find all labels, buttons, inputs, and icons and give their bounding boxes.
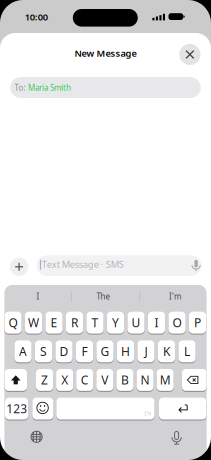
button[interactable]: U bbox=[127, 312, 145, 334]
button[interactable]: J bbox=[137, 340, 155, 362]
button[interactable]: S bbox=[35, 340, 52, 362]
staticText: P bbox=[194, 315, 201, 331]
staticText: K bbox=[163, 343, 170, 359]
staticText: L bbox=[184, 343, 190, 359]
button[interactable]: R bbox=[66, 312, 83, 334]
button[interactable]: Text Message · SMS bbox=[37, 255, 201, 276]
button[interactable]: V bbox=[96, 369, 113, 391]
staticText: I bbox=[36, 291, 39, 302]
staticText: V bbox=[101, 372, 108, 388]
button[interactable]: W bbox=[25, 312, 42, 334]
staticText: O bbox=[172, 315, 181, 331]
button[interactable] bbox=[179, 44, 200, 65]
staticText: F bbox=[81, 343, 87, 359]
button[interactable]: To: bbox=[10, 77, 201, 98]
button[interactable]: A bbox=[14, 340, 32, 362]
button[interactable]: F bbox=[76, 340, 93, 362]
staticText: EN bbox=[144, 410, 151, 417]
button[interactable]: B bbox=[116, 369, 133, 391]
staticText: B bbox=[121, 372, 129, 388]
button[interactable]: N bbox=[136, 369, 154, 391]
button[interactable]: X bbox=[56, 369, 73, 391]
button[interactable]: P bbox=[189, 312, 206, 334]
staticText: Z bbox=[41, 372, 48, 388]
button[interactable]: C bbox=[76, 369, 93, 391]
staticText: X bbox=[61, 372, 68, 388]
button[interactable]: O bbox=[168, 312, 186, 334]
staticText: To: bbox=[15, 82, 26, 93]
button[interactable] bbox=[29, 429, 45, 445]
staticText: 10:00 bbox=[25, 11, 48, 23]
button[interactable]: Z bbox=[36, 369, 53, 391]
staticText: J bbox=[144, 343, 147, 359]
staticText: T bbox=[91, 315, 98, 331]
button[interactable] bbox=[182, 369, 207, 391]
button[interactable] bbox=[4, 369, 27, 391]
staticText: G bbox=[100, 343, 109, 359]
button[interactable]: H bbox=[117, 340, 134, 362]
staticText: R bbox=[71, 315, 78, 331]
button[interactable] bbox=[32, 398, 53, 419]
staticText: The bbox=[96, 291, 110, 302]
staticText: C bbox=[81, 372, 89, 388]
button[interactable]: K bbox=[158, 340, 175, 362]
button[interactable] bbox=[10, 258, 28, 276]
staticText: Q bbox=[8, 315, 17, 331]
staticText: 123 bbox=[6, 401, 27, 416]
staticText: E bbox=[50, 315, 57, 331]
staticText: H bbox=[121, 343, 130, 359]
staticText: New Message bbox=[74, 47, 136, 59]
staticText: M bbox=[160, 372, 171, 388]
button[interactable]: L bbox=[178, 340, 196, 362]
staticText: D bbox=[59, 343, 68, 359]
button[interactable]: M bbox=[157, 369, 174, 391]
staticText: W bbox=[28, 315, 39, 331]
button[interactable]: I bbox=[8, 287, 68, 305]
staticText: Maria Smith bbox=[28, 82, 71, 93]
button[interactable] bbox=[56, 398, 155, 419]
staticText: A bbox=[19, 343, 27, 359]
staticText: Y bbox=[112, 315, 119, 331]
staticText: I bbox=[154, 315, 158, 331]
staticText: S bbox=[40, 343, 47, 359]
button[interactable]: Q bbox=[4, 312, 22, 334]
staticText: U bbox=[131, 315, 140, 331]
button[interactable]: D bbox=[55, 340, 73, 362]
staticText: I'm bbox=[169, 291, 181, 302]
staticText: Text Message · SMS bbox=[42, 258, 124, 270]
button[interactable]: G bbox=[96, 340, 114, 362]
button[interactable]: T bbox=[86, 312, 104, 334]
button[interactable] bbox=[168, 430, 184, 446]
button[interactable]: I bbox=[148, 312, 165, 334]
button[interactable]: I'm bbox=[145, 287, 205, 305]
button[interactable]: Y bbox=[107, 312, 124, 334]
staticText: N bbox=[141, 372, 150, 388]
button[interactable]: 123 bbox=[5, 398, 28, 419]
button[interactable]: E bbox=[45, 312, 63, 334]
button[interactable]: The bbox=[73, 287, 133, 305]
button[interactable] bbox=[159, 398, 206, 419]
